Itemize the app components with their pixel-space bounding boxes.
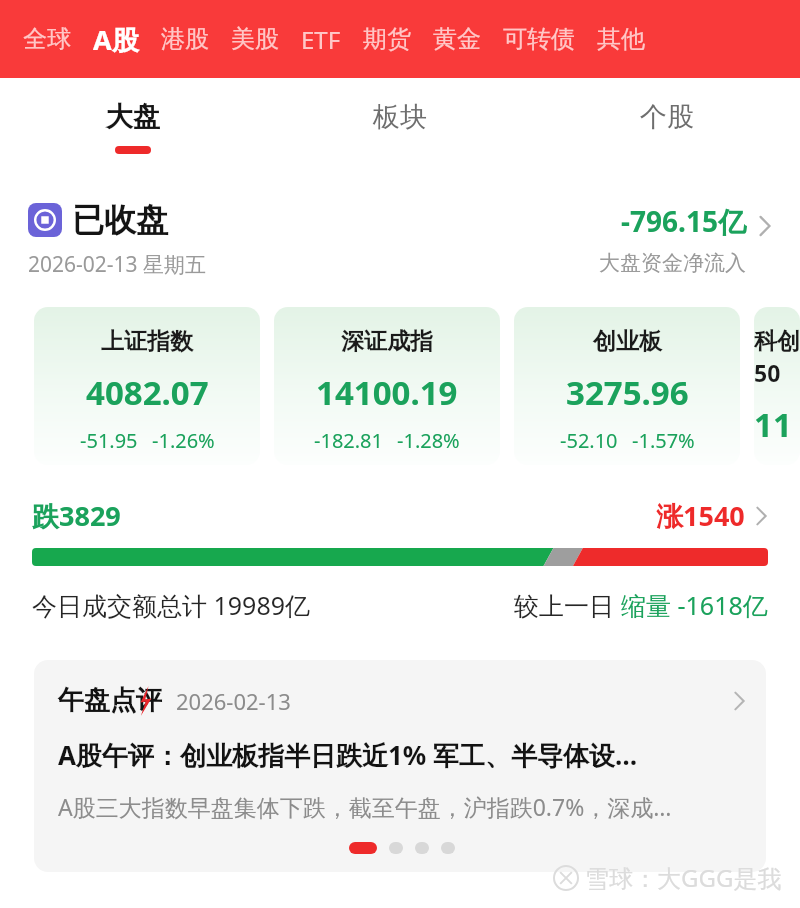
button[interactable]: 全球 [12, 18, 82, 60]
staticText: 午盘点评 [58, 684, 162, 717]
staticText: -1.57% [632, 427, 695, 454]
staticText: 1120.4 [754, 402, 800, 447]
button[interactable]: 午盘点评 [34, 660, 766, 872]
staticText: 其他 [597, 24, 645, 54]
staticText: ETF [301, 23, 341, 56]
staticText: 板块 [373, 100, 427, 134]
button[interactable]: 上证指数 [34, 307, 260, 465]
staticText: 14100.19 [316, 370, 458, 415]
staticText: 2026-02-13 星期五 [28, 250, 207, 279]
staticText: 可转债 [503, 24, 575, 54]
staticText: 黄金 [433, 24, 481, 54]
staticText: 跌3829 [32, 497, 121, 534]
staticText: 较上一日 [514, 588, 621, 622]
button[interactable]: 其他 [586, 18, 656, 60]
staticText: -51.95 [80, 427, 138, 454]
button[interactable]: 美股 [220, 18, 290, 60]
staticText: 创业板 [593, 327, 662, 356]
staticText: 美股 [231, 24, 279, 54]
button[interactable]: 科创50 [754, 307, 800, 465]
button[interactable]: ETF [290, 17, 352, 62]
button[interactable]: 板块 [266, 78, 533, 176]
button[interactable]: 跌3829 [32, 497, 768, 534]
staticText: 大盘资金净流入 [599, 250, 746, 276]
staticText: 期货 [363, 24, 411, 54]
staticText: 上证指数 [101, 327, 193, 356]
staticText: 个股 [640, 100, 694, 134]
staticText: 2026-02-13 [176, 686, 291, 716]
staticText: 4082.07 [86, 370, 209, 415]
staticText: -796.15亿 [621, 202, 746, 240]
button[interactable]: 黄金 [422, 18, 492, 60]
staticText: A股三大指数早盘集体下跌，截至午盘，沪指跌0.7%，深成… [58, 791, 672, 822]
staticText: 今日成交额总计 19989亿 [32, 588, 311, 622]
button[interactable]: 期货 [352, 18, 422, 60]
staticText: 全球 [23, 24, 71, 54]
staticText: 3275.96 [566, 370, 689, 415]
staticText: -182.81 [314, 427, 383, 454]
staticText: 科创50 [754, 327, 800, 388]
staticText: 缩量 -1618亿 [621, 588, 768, 622]
staticText: 深证成指 [341, 327, 433, 356]
staticText: A股午评：创业板指半日跌近1% 军工、半导体设… [58, 737, 638, 773]
button[interactable]: 创业板 [514, 307, 740, 465]
staticText: A股 [93, 21, 139, 58]
button[interactable]: 可转债 [492, 18, 586, 60]
staticText: 已收盘 [72, 200, 168, 240]
button[interactable]: A股 [82, 15, 150, 64]
staticText: -1.28% [397, 427, 460, 454]
staticText: -52.10 [560, 427, 618, 454]
button[interactable]: 个股 [533, 78, 800, 176]
staticText: 大盘 [106, 100, 160, 134]
staticText: -1.26% [152, 427, 215, 454]
staticText: 涨1540 [656, 497, 745, 534]
staticText: 雪球：大GGG是我 [585, 861, 782, 894]
button[interactable]: 港股 [150, 18, 220, 60]
button[interactable]: 已收盘 [28, 200, 772, 279]
button[interactable]: 深证成指 [274, 307, 500, 465]
button[interactable]: 大盘 [0, 78, 266, 176]
staticText: 港股 [161, 24, 209, 54]
